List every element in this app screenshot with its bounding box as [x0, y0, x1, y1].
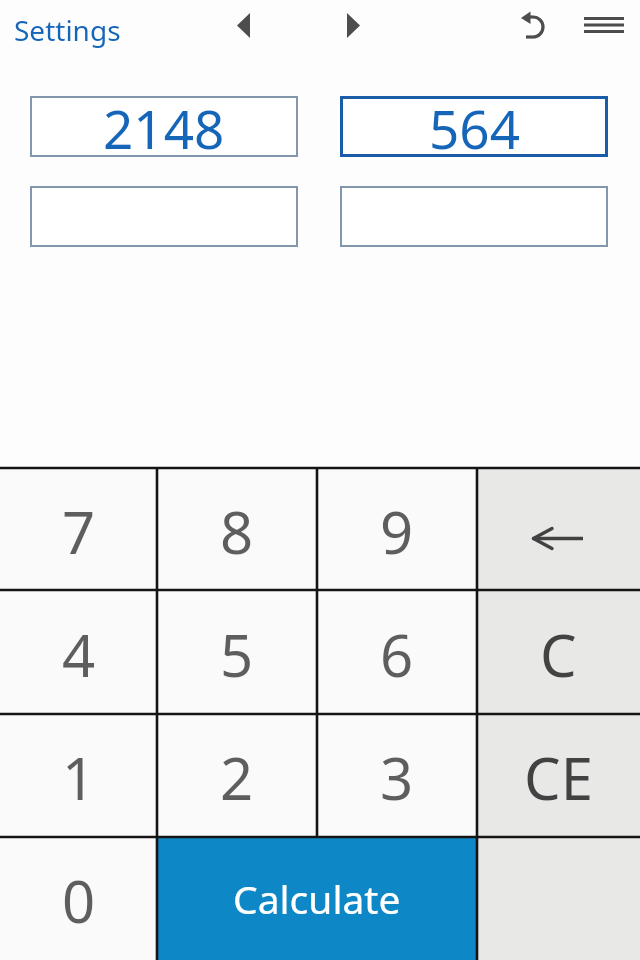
button[interactable] — [518, 11, 548, 41]
button[interactable]: 3 — [317, 714, 477, 837]
staticText: Calculate — [233, 872, 401, 925]
staticText: 2148 — [103, 92, 225, 153]
staticText: CE — [524, 738, 593, 817]
staticText: 8 — [220, 492, 254, 571]
staticText: 3 — [380, 738, 414, 817]
staticText: 0 — [62, 861, 96, 940]
button[interactable] — [477, 837, 640, 960]
button[interactable]: 2148 — [30, 96, 298, 157]
button[interactable] — [30, 186, 298, 247]
button[interactable]: 564 — [340, 96, 608, 157]
button[interactable]: CE — [477, 714, 640, 837]
staticText: 4 — [62, 615, 96, 694]
button[interactable]: 6 — [317, 590, 477, 714]
button[interactable]: 9 — [317, 468, 477, 590]
button[interactable]: C — [477, 590, 640, 714]
button[interactable] — [584, 15, 624, 35]
button[interactable]: 7 — [0, 468, 157, 590]
button[interactable]: Settings — [14, 11, 121, 49]
button[interactable]: 2 — [157, 714, 317, 837]
button[interactable]: 0 — [0, 837, 157, 960]
button[interactable] — [340, 186, 608, 247]
button[interactable]: 4 — [0, 590, 157, 714]
button[interactable] — [237, 13, 250, 38]
staticText: 7 — [62, 492, 96, 571]
staticText: 5 — [220, 615, 254, 694]
staticText: 6 — [380, 615, 414, 694]
button[interactable] — [347, 13, 360, 38]
button[interactable]: 1 — [0, 714, 157, 837]
staticText: C — [540, 615, 577, 694]
staticText: 1 — [62, 738, 96, 817]
staticText: 9 — [380, 492, 414, 571]
staticText: 564 — [429, 92, 520, 153]
button[interactable]: Calculate — [157, 837, 477, 960]
button[interactable]: 8 — [157, 468, 317, 590]
button[interactable] — [477, 468, 640, 590]
button[interactable]: 5 — [157, 590, 317, 714]
staticText: 2 — [220, 738, 254, 817]
